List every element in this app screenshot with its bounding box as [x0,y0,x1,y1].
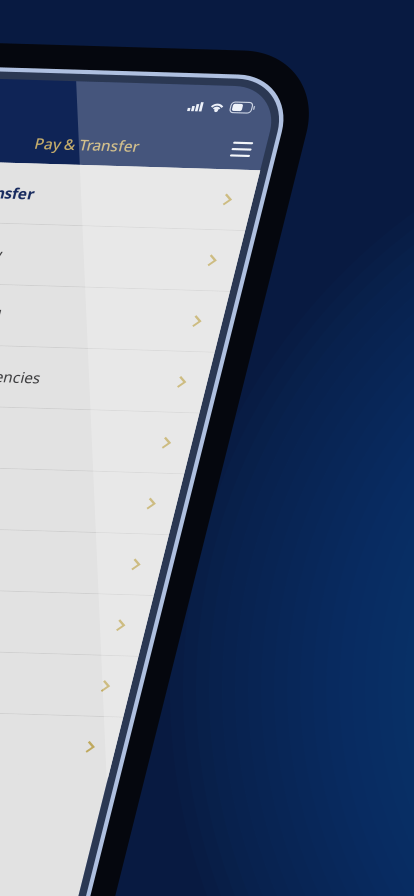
button[interactable]: Move money [0,156,375,221]
button[interactable]: Buy foreign currencies [0,288,375,353]
staticText: Pay & Transfer [132,57,242,79]
staticText: Pay in a cheque [30,706,148,727]
button[interactable]: Pay in a cheque [0,684,375,749]
button[interactable]: Payment history [0,618,375,683]
button[interactable]: Direct debits [0,486,375,551]
staticText: Manage payees [30,376,149,397]
staticText: Pay & Transfer [30,112,145,133]
button[interactable]: Pay a utility bill [0,222,375,287]
button[interactable]: Pay & Transfer [0,90,375,155]
button[interactable]: Standing orders [0,420,375,485]
button[interactable]: Manage payees [0,354,375,419]
staticText: Payment history [30,640,154,661]
button[interactable]: Future payments [0,552,375,617]
staticText: Future payments [30,574,158,595]
staticText: Buy foreign currencies [30,310,200,331]
staticText: Move money [30,178,127,199]
